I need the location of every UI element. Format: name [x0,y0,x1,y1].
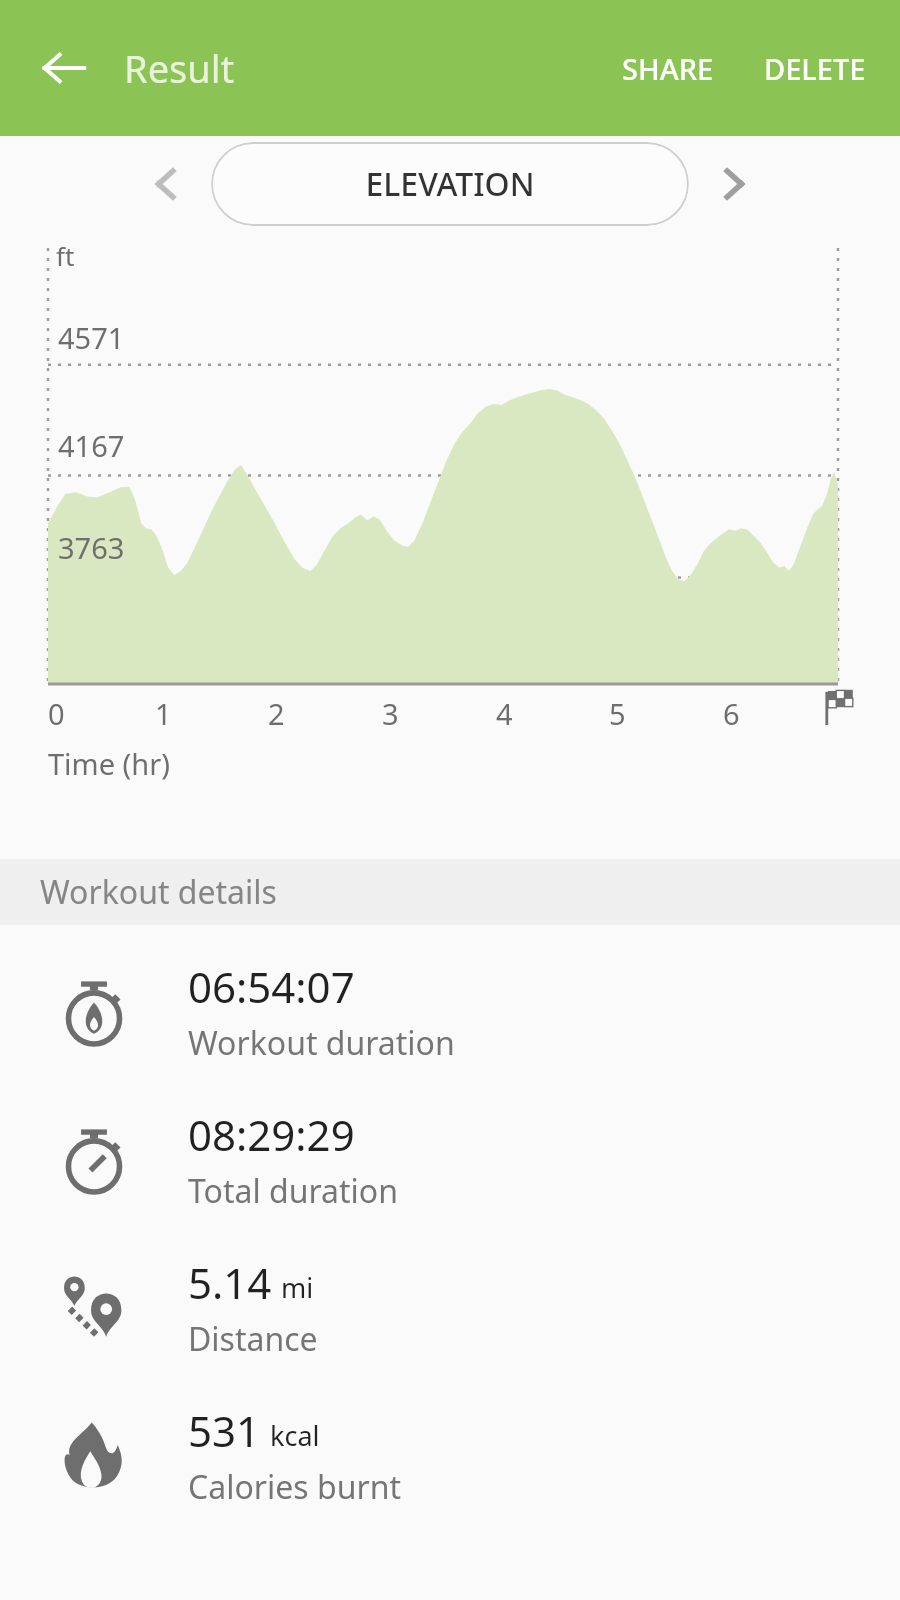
staticText: Workout details [40,870,277,914]
button[interactable]: 531 [0,1381,900,1529]
staticText: 0 [48,694,65,733]
staticText: Time (hr) [48,744,170,783]
button[interactable]: 06:54:07 [0,937,900,1085]
staticText: 08:29:29 [188,1106,355,1163]
staticText: 1 [155,694,172,733]
staticText: Distance [188,1317,318,1361]
button[interactable]: 5.14 [0,1233,900,1381]
staticText: 5 [609,694,626,733]
staticText: 6 [723,694,740,733]
staticText: Result [124,42,235,94]
staticText: Workout duration [188,1021,455,1065]
staticText: ELEVATION [365,162,535,206]
button[interactable]: Previous metric [135,153,197,215]
button[interactable]: 08:29:29 [0,1085,900,1233]
staticText: 5.14 [188,1254,272,1311]
staticText: 4 [496,694,513,733]
staticText: Total duration [188,1169,398,1213]
staticText: 4571 [58,318,125,357]
button[interactable]: DELETE [750,33,880,104]
staticText: ft [56,238,75,273]
staticText: mi [281,1269,314,1306]
button[interactable]: ELEVATION [211,142,689,226]
staticText: 3 [382,694,399,733]
staticText: 2 [268,694,285,733]
button[interactable]: SHARE [608,33,728,104]
staticText: 06:54:07 [188,958,355,1015]
staticText: Calories burnt [188,1465,401,1509]
staticText: 3763 [58,528,125,567]
staticText: SHARE [622,49,714,88]
staticText: 4167 [58,426,125,465]
staticText: kcal [270,1417,320,1454]
button[interactable]: Next metric [703,153,765,215]
staticText: DELETE [764,49,866,88]
staticText: 531 [188,1402,261,1459]
button[interactable]: Back [30,34,98,102]
